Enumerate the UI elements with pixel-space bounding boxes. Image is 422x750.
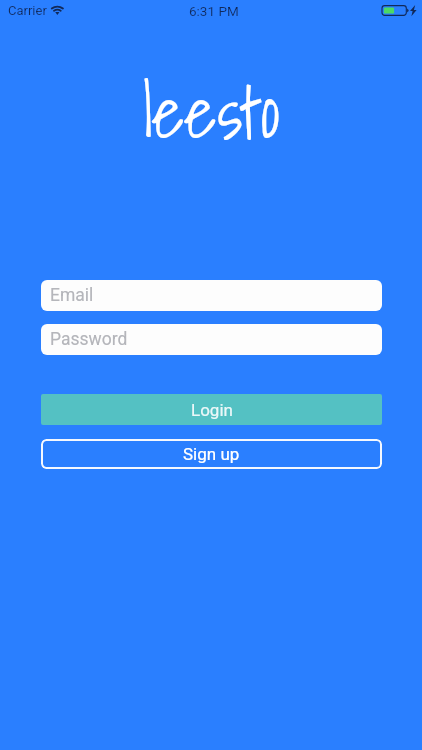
button[interactable]: Password: [41, 324, 382, 355]
staticText: Email: [50, 285, 94, 306]
staticText: 6:31 PM: [189, 3, 239, 19]
staticText: Password: [50, 329, 128, 350]
other: Battery charging: [382, 5, 418, 16]
other: Wi-Fi signal: [48, 2, 68, 18]
staticText: leesto: [143, 56, 280, 168]
button[interactable]: Sign up: [41, 439, 382, 469]
button[interactable]: Login: [41, 394, 382, 425]
staticText: Carrier: [8, 3, 47, 18]
staticText: Sign up: [183, 444, 240, 464]
button[interactable]: Email: [41, 280, 382, 311]
staticText: Login: [191, 400, 233, 420]
